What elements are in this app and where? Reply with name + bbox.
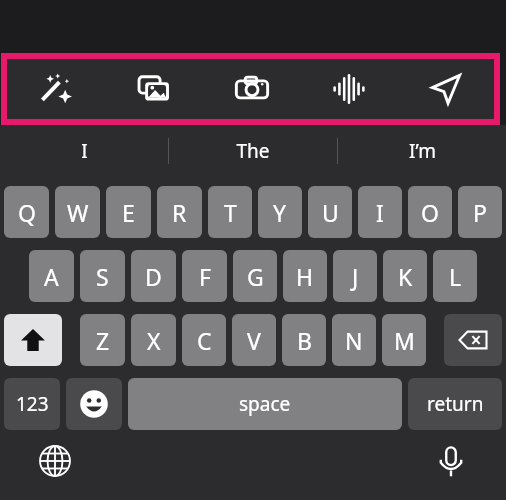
staticText: C [197, 325, 212, 356]
button[interactable]: J [333, 250, 377, 302]
staticText: Y [273, 197, 287, 228]
button[interactable]: Dictation [396, 444, 506, 484]
staticText: return [427, 391, 484, 417]
button[interactable]: 123 [4, 378, 60, 430]
button[interactable]: A [29, 250, 74, 302]
staticText: The [236, 138, 270, 164]
button[interactable]: Q [4, 186, 49, 238]
button[interactable]: D [131, 250, 176, 302]
staticText: E [122, 197, 135, 228]
button[interactable]: S [80, 250, 125, 302]
button[interactable]: Z [80, 314, 125, 366]
button[interactable]: E [106, 186, 151, 238]
button[interactable]: N [332, 314, 376, 366]
button[interactable]: Change keyboard [0, 444, 110, 484]
button[interactable]: I’m [338, 125, 506, 177]
button[interactable]: Send location [397, 59, 494, 119]
button[interactable]: L [433, 250, 477, 302]
button[interactable]: The [169, 125, 337, 177]
button[interactable]: Emoji [66, 378, 122, 430]
staticText: K [398, 261, 413, 292]
button[interactable]: I [358, 186, 402, 238]
button[interactable]: O [408, 186, 452, 238]
button[interactable]: Magic wand effects [7, 59, 105, 119]
staticText: A [44, 261, 59, 292]
button[interactable]: H [283, 250, 327, 302]
staticText: I [376, 197, 384, 228]
button[interactable]: B [282, 314, 326, 366]
staticText: Z [96, 325, 110, 356]
button[interactable]: Backspace [444, 314, 502, 366]
staticText: J [352, 261, 359, 292]
button[interactable]: R [157, 186, 202, 238]
staticText: U [322, 197, 339, 228]
staticText: space [239, 391, 291, 417]
staticText: P [473, 197, 487, 228]
button[interactable]: W [55, 186, 100, 238]
staticText: T [224, 197, 237, 228]
staticText: 123 [16, 391, 49, 417]
staticText: I [81, 138, 88, 164]
staticText: H [296, 261, 314, 292]
button[interactable]: X [131, 314, 176, 366]
staticText: O [421, 197, 439, 228]
staticText: L [449, 261, 462, 292]
button[interactable]: Shift [4, 314, 62, 366]
staticText: M [394, 325, 415, 356]
button[interactable]: V [232, 314, 276, 366]
button[interactable]: F [182, 250, 227, 302]
button[interactable]: return [408, 378, 502, 430]
button[interactable]: Y [258, 186, 302, 238]
button[interactable]: T [208, 186, 252, 238]
button[interactable]: I [0, 125, 168, 177]
staticText: I’m [409, 138, 436, 164]
staticText: N [345, 325, 363, 356]
staticText: B [297, 325, 312, 356]
button[interactable]: G [233, 250, 277, 302]
button[interactable]: Photos [105, 59, 203, 119]
staticText: Q [18, 197, 36, 228]
button[interactable]: Audio message [300, 59, 397, 119]
staticText: D [145, 261, 162, 292]
staticText: F [199, 261, 211, 292]
staticText: G [247, 261, 264, 292]
staticText: X [147, 325, 161, 356]
staticText: R [172, 197, 187, 228]
button[interactable]: K [383, 250, 427, 302]
button[interactable]: Camera [203, 59, 300, 119]
button[interactable]: M [382, 314, 426, 366]
button[interactable]: U [308, 186, 352, 238]
staticText: W [67, 197, 89, 228]
button[interactable]: C [182, 314, 226, 366]
staticText: S [96, 261, 109, 292]
staticText: V [247, 325, 261, 356]
button[interactable]: space [128, 378, 402, 430]
button[interactable]: P [458, 186, 502, 238]
